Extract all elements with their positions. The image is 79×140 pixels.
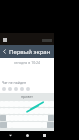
button[interactable]: Gallery [20,87,24,91]
button[interactable]: Attach [8,87,12,91]
button[interactable]: Key [39,101,44,107]
staticText: Чат не найден [0,80,27,85]
button[interactable]: More [26,87,30,91]
staticText: Первый экран [9,48,51,56]
staticText: сегодня в 10:24 [0,60,54,65]
button[interactable]: Back [0,45,9,58]
button[interactable]: Key [34,108,39,114]
button[interactable]: Emoji [2,87,6,91]
button[interactable]: Key [34,101,39,107]
button[interactable]: Camera [14,87,18,91]
button[interactable]: Back [3,131,17,140]
button[interactable]: Recents [37,131,51,140]
staticText: привет [21,94,33,99]
button[interactable]: Home [20,131,34,140]
button[interactable]: Key [29,108,34,114]
button[interactable]: Key [29,101,34,107]
button[interactable]: Key [24,108,29,114]
